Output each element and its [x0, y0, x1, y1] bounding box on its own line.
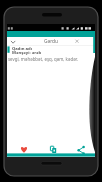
- staticText: Gərdu: [44, 38, 58, 45]
- staticText: Mənşəyi: ərəb: [12, 50, 42, 56]
- staticText: sevgi, məhəbbət, eşq, qəm, kədər.: [8, 56, 78, 62]
- button[interactable]: [17, 144, 28, 155]
- button[interactable]: [48, 144, 59, 155]
- button[interactable]: [7, 37, 95, 45]
- button[interactable]: [76, 144, 87, 155]
- button[interactable]: [73, 38, 81, 45]
- staticText: Qadın adı: [12, 46, 32, 52]
